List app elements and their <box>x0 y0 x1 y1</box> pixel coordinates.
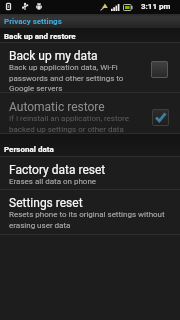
staticText: 3:11 pm <box>141 2 171 11</box>
staticText: If I reinstall an application, restore b… <box>9 114 145 134</box>
staticText: Automatic restore <box>9 100 105 114</box>
staticText: Erases all data on phone <box>9 177 175 186</box>
button[interactable]: Checked <box>152 109 169 126</box>
staticText: Resets phone to its original settings wi… <box>9 210 175 230</box>
staticText: Personal data <box>4 145 54 154</box>
button[interactable]: Automatic restore <box>0 93 180 133</box>
button[interactable]: Privacy settings <box>0 14 180 28</box>
button[interactable]: Settings reset <box>0 190 180 234</box>
staticText: Back up and restore <box>4 32 76 41</box>
staticText: Settings reset <box>9 196 83 210</box>
staticText: Back up my data <box>9 49 98 63</box>
button[interactable]: Factory data reset <box>0 157 180 188</box>
button[interactable]: Unchecked <box>151 61 168 78</box>
staticText: Back up application data, Wi-Fi password… <box>9 63 145 93</box>
staticText: Factory data reset <box>9 163 106 177</box>
button[interactable]: Back up my data <box>0 43 180 92</box>
staticText: Privacy settings <box>4 17 62 26</box>
